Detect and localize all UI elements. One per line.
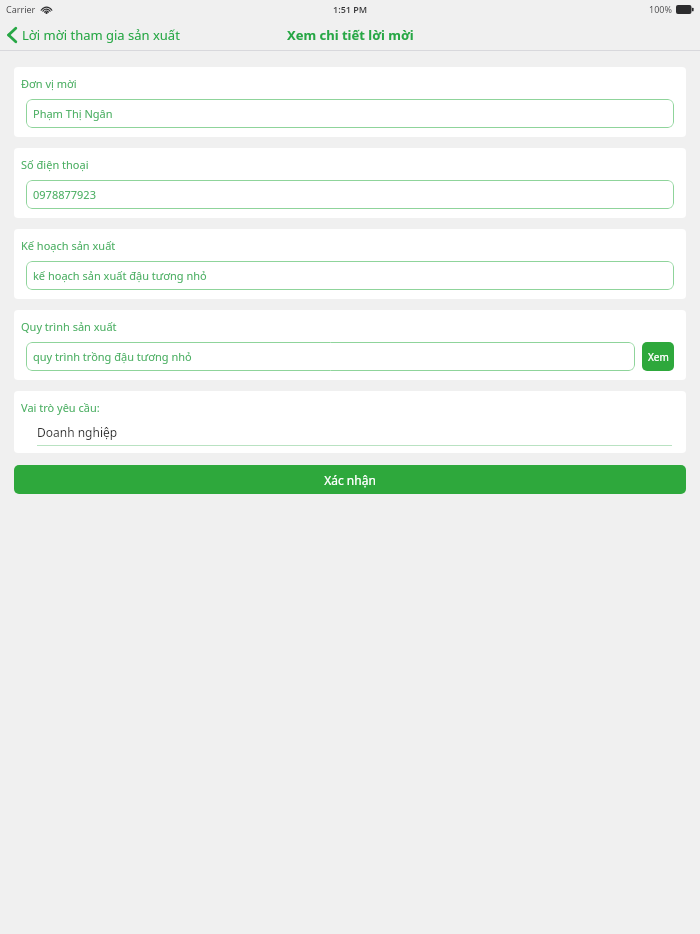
button[interactable]: Vai trò yêu cầu:: [14, 391, 686, 453]
staticText: Doanh nghiệp: [37, 424, 118, 440]
staticText: Xem: [648, 350, 669, 364]
button[interactable]: kế hoạch sản xuất đậu tương nhỏ: [26, 261, 674, 290]
staticText: Kế hoạch sản xuất: [21, 238, 116, 253]
staticText: Quy trình sản xuất: [21, 319, 117, 334]
button[interactable]: Đơn vị mời: [14, 67, 686, 137]
staticText: Phạm Thị Ngân: [33, 106, 113, 121]
staticText: Số điện thoại: [21, 157, 89, 172]
button[interactable]: quy trình trồng đậu tương nhỏ: [26, 342, 635, 371]
staticText: Lời mời tham gia sản xuất: [22, 26, 180, 44]
button[interactable]: 0978877923: [26, 180, 674, 209]
staticText: 100%: [649, 3, 672, 15]
staticText: Xem chi tiết lời mời: [287, 26, 414, 44]
button[interactable]: Phạm Thị Ngân: [26, 99, 674, 128]
staticText: Vai trò yêu cầu:: [21, 400, 100, 415]
staticText: Đơn vị mời: [21, 76, 77, 91]
button[interactable]: Số điện thoại: [14, 148, 686, 218]
staticText: 1:51 PM: [333, 3, 368, 15]
staticText: 0978877923: [33, 187, 96, 202]
other: Back: [7, 27, 17, 43]
button[interactable]: Xác nhận: [14, 465, 686, 494]
staticText: Carrier: [6, 3, 36, 15]
staticText: kế hoạch sản xuất đậu tương nhỏ: [33, 268, 207, 283]
button[interactable]: Back: [0, 22, 188, 48]
staticText: quy trình trồng đậu tương nhỏ: [33, 349, 192, 364]
button[interactable]: Kế hoạch sản xuất: [14, 229, 686, 299]
button[interactable]: Xem: [642, 342, 674, 371]
staticText: Xác nhận: [324, 472, 376, 488]
button[interactable]: Quy trình sản xuất: [14, 310, 686, 380]
